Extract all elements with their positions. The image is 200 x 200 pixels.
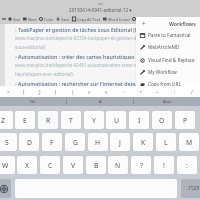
staticText: « [88,89,91,95]
button[interactable]: R [38,111,58,129]
button[interactable]: « [81,86,98,97]
staticText: : [174,89,176,95]
button[interactable]: : [177,156,197,174]
button[interactable]: E [15,111,35,129]
button[interactable]: Size [7,14,22,24]
staticText: E [23,116,27,125]
button[interactable]: Save [55,14,71,24]
staticText: - [123,89,125,95]
button[interactable]: Word Count [102,14,131,24]
button[interactable]: – [149,86,166,97]
staticText: S [5,138,9,147]
button[interactable]: : [166,86,183,97]
button[interactable]: S [0,133,17,151]
button[interactable]: P [175,111,195,129]
button[interactable]: Color [38,14,55,24]
button[interactable]: Visual Find & Replace [136,54,200,66]
button[interactable]: - [115,86,132,97]
button[interactable]: W [0,156,15,174]
button[interactable]: D [19,133,39,151]
button[interactable]: .?123 [181,179,200,198]
button[interactable]: X [17,156,37,174]
button[interactable]: ) [64,86,81,97]
button[interactable]: J [110,133,130,151]
button[interactable]: M [179,133,199,151]
staticText: T [69,116,73,125]
button[interactable]: ? [131,156,151,174]
button[interactable]: My Workflow [136,66,200,78]
button[interactable]: ( [48,86,64,97]
button[interactable]: Switch keyboard [0,179,11,198]
staticText: Paste to Fantastical [148,32,191,38]
button[interactable]: V [63,156,83,174]
button[interactable]: À [67,97,133,106]
button[interactable]: • [132,86,149,97]
button[interactable]: Se [131,14,143,24]
staticText: M [186,138,193,147]
staticText: aaa [98,2,104,6]
staticText: .?123 [187,185,200,192]
button[interactable]: Copy from URL [136,78,200,90]
button[interactable]: ! [154,156,174,174]
button[interactable]: Y [84,111,104,129]
button[interactable]: U [106,111,126,129]
staticText: - TaskPaper et gestion de tâches sous Ed… [15,26,143,33]
staticText: H [95,138,101,147]
staticText: ! [163,161,165,170]
button[interactable]: Add workflow [140,19,148,27]
button[interactable]: I [129,111,149,129]
staticText: N [115,161,121,170]
button[interactable]: De [0,97,66,106]
button[interactable]: N [108,156,128,174]
staticText: K [141,138,146,147]
button[interactable]: L [156,133,176,151]
staticText: My Workflow [148,69,177,75]
staticText: Note [28,17,37,22]
button[interactable]: B [86,156,106,174]
button[interactable]: [ [16,86,32,97]
button[interactable]: Copy All Text [71,14,102,24]
staticText: Size [13,17,21,22]
button[interactable]: F [42,133,62,151]
staticText: W [2,161,9,170]
button[interactable]: WebArticleMD [136,41,200,53]
button[interactable]: O [152,111,172,129]
button[interactable]: - Automatisation : rechercher sur l'inte… [15,80,200,88]
staticText: Word Count [108,17,130,22]
button[interactable]: ] [32,86,48,97]
staticText: www.macplus.net/depeche-82734-taskpaper-… [15,35,137,41]
button[interactable]: » [98,86,115,97]
staticText: [ [23,89,25,95]
staticText: Save [61,17,70,22]
button[interactable]: Paste to Fantastical [136,29,200,41]
staticText: - Automatisation : rechercher sur l'inte… [15,80,146,87]
staticText: U [114,116,119,125]
staticText: R [46,116,51,125]
button[interactable]: T [61,111,81,129]
staticText: X [25,161,29,170]
button[interactable]: K [133,133,153,151]
staticText: J [119,138,121,147]
button[interactable]: G [65,133,85,151]
button[interactable]: - Automatisation : créer des cartes heur… [15,53,200,62]
staticText: Copy All Text [77,17,101,22]
button[interactable]: - TaskPaper et gestion de tâches sous Ed… [15,26,200,35]
button[interactable]: C [40,156,60,174]
staticText: • [140,89,142,95]
staticText: P [183,116,188,125]
button[interactable]: Z [0,111,13,129]
button[interactable]: Note [22,14,38,24]
button[interactable]: > [0,86,16,97]
staticText: sous-editorial) [15,44,46,50]
staticText: ( [55,89,57,95]
staticText: > [7,89,10,95]
staticText: Visual Find & Replace [148,57,195,63]
button[interactable]: H [88,133,108,151]
button[interactable]: / [183,86,200,97]
staticText: ) [72,89,74,95]
staticText: À [99,99,102,104]
staticText: WebArticleMD [148,44,180,50]
button[interactable] [1,14,7,24]
button[interactable]: Avec [134,97,200,106]
